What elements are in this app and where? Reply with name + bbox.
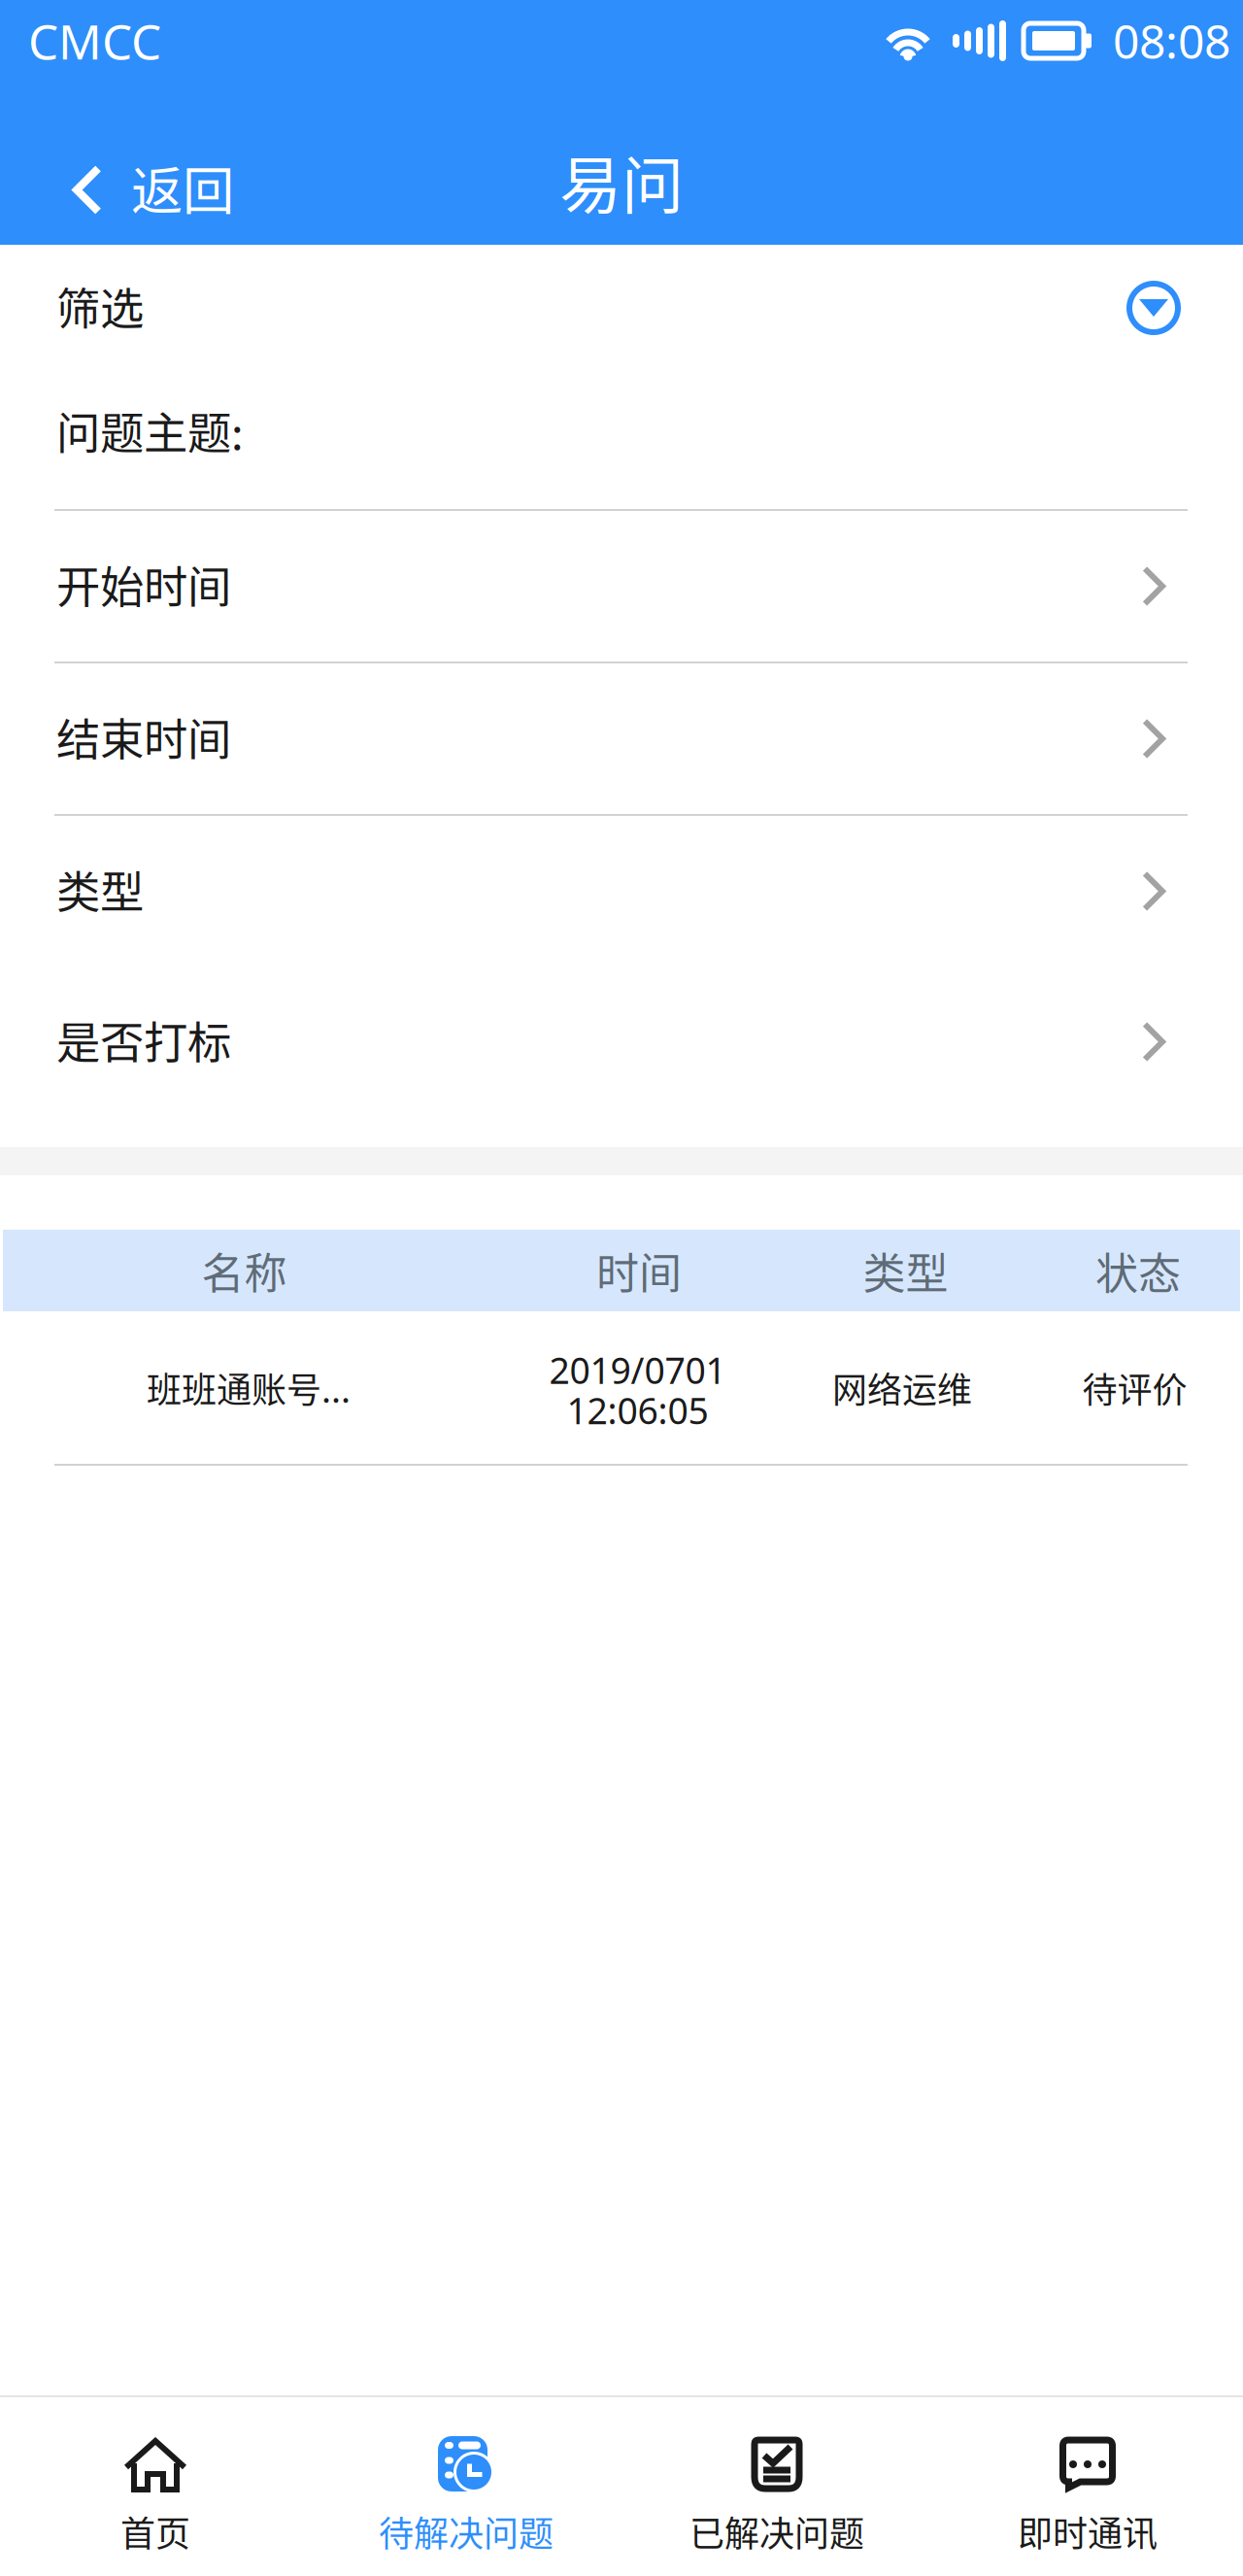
button[interactable]: 类型: [0, 816, 1243, 966]
staticText: 08:08: [1113, 10, 1230, 72]
button[interactable]: 结束时间: [0, 663, 1243, 814]
staticText: 结束时间: [56, 705, 231, 769]
button[interactable]: 开始时间: [0, 511, 1243, 661]
staticText: 首页: [120, 2506, 190, 2557]
staticText: 返回: [131, 150, 234, 225]
button[interactable]: 待解决问题: [311, 2397, 621, 2576]
staticText: 状态: [1095, 1240, 1181, 1301]
button[interactable]: 是否打标: [0, 966, 1243, 1117]
staticText: 类型: [863, 1240, 948, 1301]
button[interactable]: 已解决问题: [621, 2397, 932, 2576]
staticText: 名称: [202, 1240, 287, 1301]
staticText: 即时通讯: [1018, 2506, 1158, 2557]
staticText: 问题主题:: [56, 398, 244, 462]
staticText: 类型: [56, 857, 144, 921]
button[interactable]: 即时通讯: [932, 2397, 1243, 2576]
staticText: 已解决问题: [689, 2506, 864, 2557]
staticText: 待评价: [1082, 1362, 1187, 1413]
staticText: 2019/0701: [549, 1346, 726, 1394]
staticText: 筛选: [56, 274, 144, 338]
button[interactable]: 展开筛选: [1119, 273, 1189, 343]
staticText: 待解决问题: [379, 2506, 554, 2557]
staticText: 是否打标: [56, 1008, 231, 1072]
staticText: 12:06:05: [567, 1386, 708, 1434]
staticText: 班班通账号...: [147, 1362, 351, 1413]
staticText: CMCC: [28, 9, 161, 73]
staticText: 易问: [559, 136, 684, 226]
staticText: 时间: [596, 1240, 682, 1301]
button[interactable]: 班班通账号...: [0, 1311, 1243, 1464]
button[interactable]: 首页: [0, 2397, 311, 2576]
button[interactable]: 返回: [0, 119, 269, 262]
staticText: 网络运维: [832, 1362, 972, 1413]
staticText: 开始时间: [56, 552, 231, 616]
